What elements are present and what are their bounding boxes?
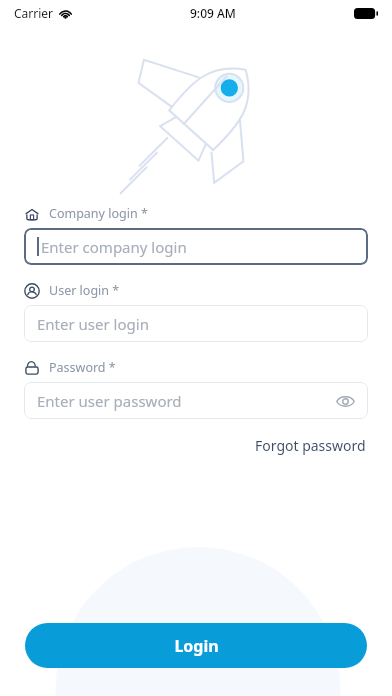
staticText: Password * [49,359,116,376]
button[interactable]: Enter company login [24,228,368,265]
staticText: 9:09 AM [190,5,236,21]
staticText: Carrier [14,5,54,21]
button[interactable]: Show password [333,389,357,413]
staticText: Company login * [49,205,148,222]
staticText: Enter user password [37,391,182,411]
button[interactable]: Forgot password [253,433,368,458]
button[interactable]: Enter user password [24,382,368,419]
staticText: Login [174,635,219,657]
staticText: Enter company login [41,237,187,257]
staticText: Forgot password [255,436,366,455]
button[interactable]: Enter user login [24,305,368,342]
button[interactable]: Login [25,623,367,668]
staticText: User login * [49,282,120,299]
staticText: Enter user login [37,314,149,334]
